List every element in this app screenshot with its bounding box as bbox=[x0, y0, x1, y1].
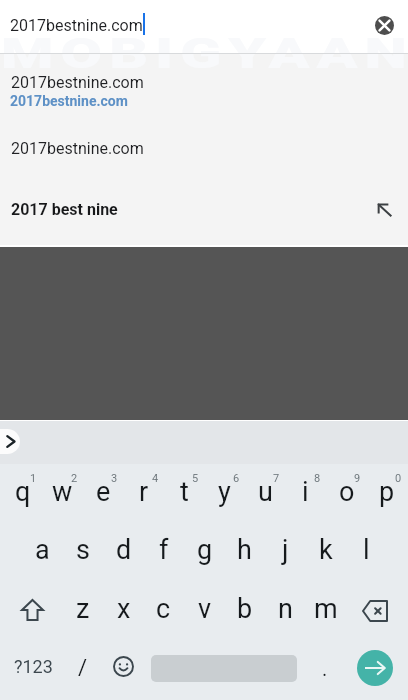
staticText: b bbox=[237, 593, 253, 625]
button[interactable] bbox=[164, 462, 205, 520]
button[interactable] bbox=[142, 640, 306, 696]
button[interactable] bbox=[103, 579, 144, 635]
staticText: 2017bestnine.com bbox=[11, 73, 144, 92]
staticText: . bbox=[322, 657, 328, 680]
button[interactable]: Shift bbox=[2, 582, 62, 638]
button[interactable] bbox=[62, 579, 103, 635]
staticText: e bbox=[96, 476, 111, 508]
button[interactable] bbox=[305, 521, 346, 577]
staticText: h bbox=[237, 534, 252, 566]
staticText: 7 bbox=[273, 472, 280, 485]
button[interactable]: Show more suggestions bbox=[0, 429, 20, 454]
staticText: u bbox=[258, 476, 273, 508]
button[interactable] bbox=[204, 462, 245, 520]
staticText: / bbox=[78, 655, 88, 681]
staticText: j bbox=[282, 534, 289, 566]
staticText: o bbox=[339, 476, 355, 508]
staticText: z bbox=[76, 593, 90, 625]
button[interactable]: 2017bestnine.com bbox=[0, 130, 408, 168]
button[interactable]: 2017bestnine.com bbox=[0, 0, 408, 53]
staticText: 8 bbox=[314, 472, 321, 485]
button[interactable]: / bbox=[64, 640, 102, 696]
staticText: m bbox=[314, 593, 338, 625]
button[interactable] bbox=[245, 462, 286, 520]
staticText: g bbox=[197, 534, 213, 566]
button[interactable] bbox=[265, 579, 306, 635]
button[interactable] bbox=[326, 462, 367, 520]
button[interactable] bbox=[265, 521, 306, 577]
staticText: i bbox=[302, 476, 309, 508]
button[interactable]: Clear query bbox=[362, 3, 406, 47]
staticText: 3 bbox=[111, 472, 118, 485]
staticText: p bbox=[379, 476, 395, 508]
staticText: s bbox=[76, 534, 90, 566]
button[interactable]: 2017 best nine bbox=[0, 190, 408, 230]
button[interactable] bbox=[285, 462, 326, 520]
button[interactable] bbox=[366, 462, 407, 520]
button[interactable] bbox=[123, 462, 164, 520]
button[interactable] bbox=[22, 521, 63, 577]
button[interactable] bbox=[83, 462, 124, 520]
button[interactable] bbox=[143, 521, 184, 577]
staticText: v bbox=[198, 593, 212, 625]
staticText: n bbox=[278, 593, 293, 625]
staticText: ?123 bbox=[14, 656, 53, 677]
staticText: 5 bbox=[192, 472, 199, 485]
staticText: 0 bbox=[395, 472, 402, 485]
button[interactable]: ?123 bbox=[2, 638, 64, 694]
button[interactable] bbox=[143, 579, 184, 635]
staticText: 9 bbox=[354, 472, 361, 485]
staticText: l bbox=[363, 534, 370, 566]
button[interactable] bbox=[224, 579, 265, 635]
staticText: 4 bbox=[152, 472, 159, 485]
staticText: 1 bbox=[30, 472, 37, 485]
button[interactable] bbox=[184, 521, 225, 577]
staticText: x bbox=[117, 593, 131, 625]
button[interactable] bbox=[42, 462, 83, 520]
staticText: t bbox=[180, 476, 189, 508]
staticText: k bbox=[319, 534, 333, 566]
button[interactable]: Emoji bbox=[103, 638, 143, 694]
staticText: MOBIGYAAN bbox=[1, 28, 408, 74]
staticText: 2017bestnine.com bbox=[11, 139, 144, 158]
button[interactable]: Insert suggestion bbox=[364, 190, 404, 230]
staticText: c bbox=[156, 593, 171, 625]
staticText: 2017bestnine.com bbox=[10, 16, 143, 35]
button[interactable] bbox=[224, 521, 265, 577]
staticText: 6 bbox=[233, 472, 240, 485]
staticText: a bbox=[35, 534, 50, 566]
staticText: 2 bbox=[71, 472, 78, 485]
button[interactable] bbox=[2, 462, 43, 520]
button[interactable] bbox=[305, 579, 346, 635]
button[interactable]: . bbox=[306, 640, 344, 696]
staticText: 2017 best nine bbox=[11, 200, 118, 219]
button[interactable]: 2017bestnine.com bbox=[0, 62, 408, 114]
button[interactable] bbox=[62, 521, 103, 577]
button[interactable]: Backspace bbox=[346, 583, 406, 639]
staticText: f bbox=[159, 534, 169, 566]
button[interactable]: Search bbox=[344, 640, 406, 696]
button[interactable] bbox=[103, 521, 144, 577]
staticText: q bbox=[15, 476, 31, 508]
button[interactable] bbox=[184, 579, 225, 635]
staticText: 2017bestnine.com bbox=[10, 93, 128, 109]
staticText: r bbox=[139, 476, 149, 508]
button[interactable] bbox=[346, 521, 387, 577]
staticText: d bbox=[116, 534, 132, 566]
staticText: y bbox=[218, 476, 231, 508]
staticText: w bbox=[52, 476, 73, 508]
